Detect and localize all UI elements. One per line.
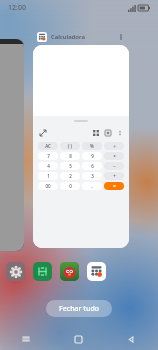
staticText: ÷ xyxy=(113,143,116,149)
button[interactable]: Angry Birds xyxy=(60,262,79,281)
staticText: , xyxy=(91,183,93,189)
staticText: 12:00 xyxy=(8,3,26,13)
button[interactable]: × xyxy=(104,152,124,160)
button[interactable]: % xyxy=(82,142,102,150)
button[interactable]: Fechar tudo xyxy=(46,300,112,317)
button[interactable]: 0 xyxy=(60,182,80,190)
button[interactable]: Início xyxy=(52,328,105,350)
button[interactable]: Aplicativo verde xyxy=(33,262,52,281)
staticText: 6 xyxy=(91,163,94,169)
button[interactable]: ÷ xyxy=(104,142,124,150)
button[interactable]: − xyxy=(104,162,124,170)
button[interactable]: Modo científico xyxy=(103,128,112,137)
staticText: − xyxy=(113,163,116,169)
button[interactable]: 8 xyxy=(60,152,80,160)
button[interactable]: Expandir xyxy=(33,45,129,248)
button[interactable]: Configurações xyxy=(6,262,25,281)
staticText: 8 xyxy=(69,153,72,159)
button[interactable]: AC xyxy=(38,142,58,150)
staticText: = xyxy=(113,183,116,189)
staticText: 7 xyxy=(47,153,50,159)
button[interactable]: Recentes xyxy=(0,328,52,350)
button[interactable]: 4 xyxy=(38,162,58,170)
button[interactable] xyxy=(0,39,24,251)
button[interactable]: 9 xyxy=(82,152,102,160)
staticText: 2 xyxy=(69,173,72,179)
staticText: 9 xyxy=(91,153,94,159)
button[interactable]: 1 xyxy=(38,172,58,180)
button[interactable]: 7 xyxy=(38,152,58,160)
staticText: 1 xyxy=(47,173,50,179)
button[interactable]: Mais xyxy=(115,128,124,137)
button[interactable]: 00 xyxy=(38,182,58,190)
staticText: 4 xyxy=(47,163,50,169)
button[interactable]: = xyxy=(104,182,124,190)
staticText: × xyxy=(113,153,116,159)
button[interactable]: 6 xyxy=(82,162,102,170)
button[interactable]: ( ) xyxy=(60,142,80,150)
staticText: Fechar tudo xyxy=(59,304,100,314)
button[interactable]: + xyxy=(104,172,124,180)
button[interactable]: Expandir xyxy=(38,128,47,137)
button[interactable]: 3 xyxy=(82,172,102,180)
button[interactable]: 2 xyxy=(60,172,80,180)
button[interactable]: Calculadora xyxy=(87,262,106,281)
staticText: 3 xyxy=(91,173,94,179)
staticText: ( ) xyxy=(68,143,72,149)
button[interactable]: Histórico xyxy=(91,128,100,137)
button[interactable]: Mais opções xyxy=(116,32,126,42)
button[interactable]: 5 xyxy=(60,162,80,170)
staticText: 5 xyxy=(69,163,72,169)
button[interactable]: Voltar xyxy=(105,328,158,350)
staticText: 0 xyxy=(69,183,72,189)
button[interactable]: , xyxy=(82,182,102,190)
staticText: % xyxy=(90,143,94,149)
staticText: 00 xyxy=(45,183,51,189)
staticText: Calculadora xyxy=(51,33,85,41)
staticText: AC xyxy=(45,143,51,149)
staticText: + xyxy=(113,173,116,179)
